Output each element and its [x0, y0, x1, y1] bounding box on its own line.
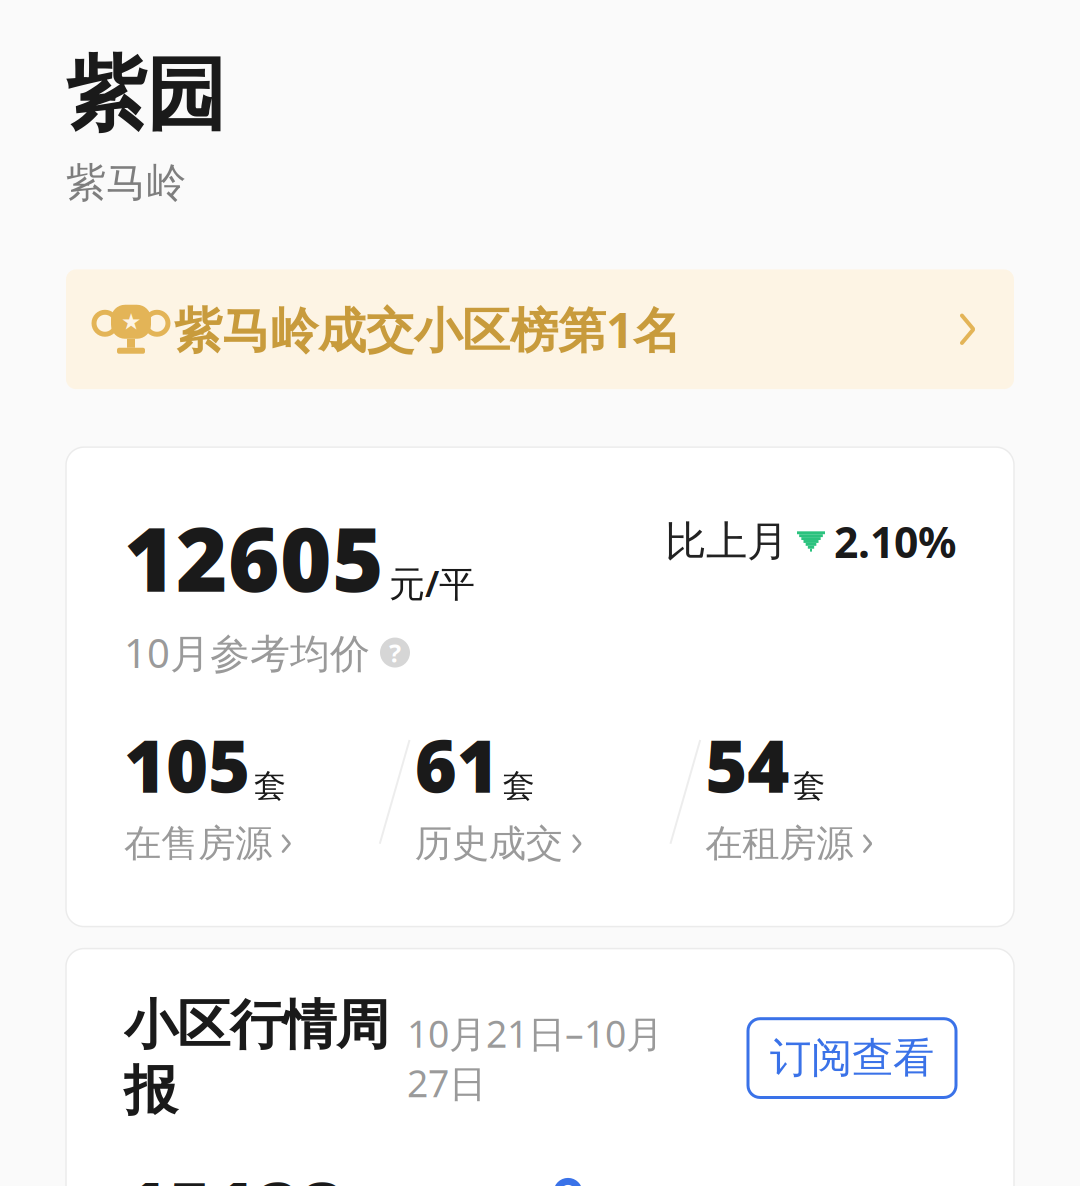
staticText: 15128 [124, 1158, 344, 1186]
staticText: 元/平 [389, 559, 475, 607]
staticText: 105 [124, 717, 250, 813]
staticText: 小区行情周报 [124, 993, 389, 1124]
staticText: 2.10% [834, 513, 956, 570]
staticText: 历史成交 [415, 821, 563, 867]
staticText: ★ [121, 309, 141, 335]
button[interactable]: 54 [705, 713, 956, 871]
staticText: 10月21日–10月27日 [407, 1008, 663, 1108]
staticText: 54 [705, 717, 789, 813]
staticText: 订阅查看 [770, 1033, 934, 1083]
staticText: 紫马岭成交小区榜第1名 [174, 297, 681, 361]
button[interactable]: 105 [124, 713, 375, 871]
staticText: 套 [793, 766, 825, 806]
staticText: 套 [503, 766, 535, 806]
button[interactable]: ★ [66, 269, 1014, 389]
staticText: 套 [254, 766, 286, 806]
staticText: 比上月 [665, 516, 788, 567]
staticText: 在售房源 [124, 821, 272, 867]
button[interactable]: 订阅查看 [748, 1019, 956, 1097]
staticText: 紫马岭 [66, 158, 186, 207]
staticText: 12605 [124, 499, 384, 616]
staticText: 10月参考均价 [124, 626, 370, 679]
staticText: ? [389, 636, 401, 669]
button[interactable]: 61 [415, 713, 665, 871]
staticText: 紫园 [66, 46, 226, 144]
staticText: 在租房源 [705, 821, 853, 867]
button[interactable]: 参考均价说明 [380, 638, 410, 668]
staticText: 61 [415, 717, 499, 813]
